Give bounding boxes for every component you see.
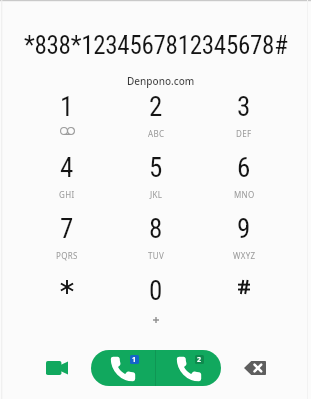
staticText: 0 bbox=[149, 275, 163, 307]
button[interactable]: 9 bbox=[200, 213, 288, 271]
button[interactable]: 6 bbox=[200, 152, 288, 210]
button[interactable]: 1 bbox=[23, 91, 111, 149]
staticText: 4 bbox=[60, 152, 74, 184]
staticText: 1 bbox=[60, 91, 74, 123]
button[interactable]: 4 bbox=[23, 152, 111, 210]
staticText: MNO bbox=[234, 189, 255, 200]
staticText: *838*1234567812345678# bbox=[24, 31, 288, 60]
button[interactable]: Call with SIM 2 bbox=[156, 350, 221, 386]
staticText: 5 bbox=[149, 152, 163, 184]
button[interactable]: 2 bbox=[112, 91, 200, 149]
button[interactable]: 7 bbox=[23, 213, 111, 271]
staticText: TUV bbox=[148, 250, 165, 261]
button[interactable]: 0 bbox=[112, 275, 200, 333]
button[interactable]: 8 bbox=[112, 213, 200, 271]
staticText: 9 bbox=[237, 213, 251, 245]
staticText: 7 bbox=[60, 213, 74, 245]
staticText: ABC bbox=[148, 128, 165, 139]
staticText: 6 bbox=[237, 152, 251, 184]
button[interactable]: 5 bbox=[112, 152, 200, 210]
staticText: 2 bbox=[197, 355, 202, 364]
button[interactable] bbox=[200, 275, 288, 333]
button[interactable] bbox=[23, 275, 111, 333]
staticText: WXYZ bbox=[233, 250, 256, 261]
staticText: 2 bbox=[149, 91, 163, 123]
staticText: GHI bbox=[59, 189, 75, 200]
button[interactable]: 3 bbox=[200, 91, 288, 149]
staticText: JKL bbox=[150, 189, 163, 200]
staticText: 3 bbox=[237, 91, 251, 123]
staticText: PQRS bbox=[56, 250, 78, 261]
staticText: DEF bbox=[236, 128, 252, 139]
staticText: Denpono.com bbox=[127, 74, 195, 88]
button[interactable]: Call with SIM 1 bbox=[91, 350, 155, 386]
button[interactable]: Backspace bbox=[233, 346, 277, 390]
staticText: 8 bbox=[149, 213, 163, 245]
button[interactable]: Video call bbox=[34, 346, 79, 390]
staticText: 1 bbox=[132, 355, 137, 364]
